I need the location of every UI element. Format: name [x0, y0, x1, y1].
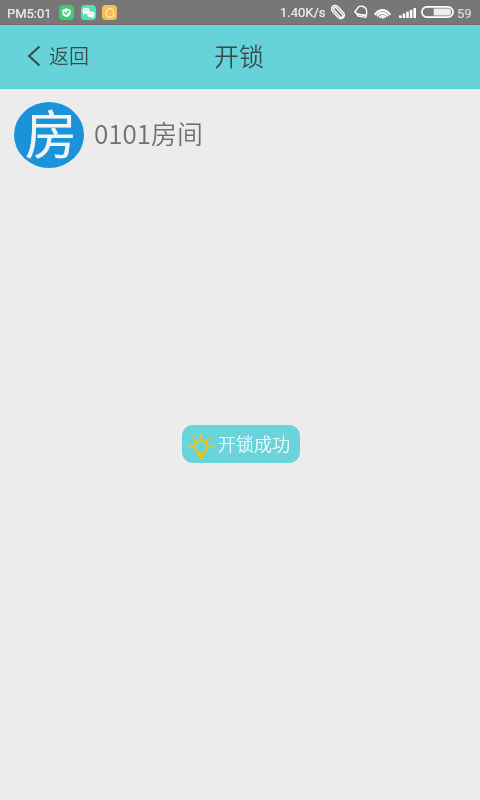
staticText: 返回: [49, 41, 89, 70]
staticText: 59: [457, 6, 472, 21]
other: Back: [28, 46, 40, 66]
button[interactable]: Unlock success: [182, 425, 300, 463]
other: WeChat: [81, 5, 96, 20]
staticText: PM5:01: [7, 6, 52, 21]
other: Security app: [59, 5, 74, 20]
other: Wi-Fi: [373, 7, 392, 19]
other: Unlock success: [188, 428, 214, 454]
staticText: 开锁: [214, 37, 265, 73]
other: Signal: [399, 8, 416, 18]
other: QQ: [102, 5, 117, 20]
other: Notifications: [354, 5, 368, 18]
button[interactable]: Back: [0, 26, 110, 88]
other: Battery: [421, 6, 454, 18]
staticText: 0101房间: [94, 114, 204, 152]
staticText: 1.40K/s: [280, 5, 326, 20]
other: Attachment: [331, 6, 345, 18]
staticText: 开锁成功: [218, 430, 290, 456]
staticText: 房: [25, 94, 78, 169]
button[interactable]: 房: [0, 88, 480, 180]
